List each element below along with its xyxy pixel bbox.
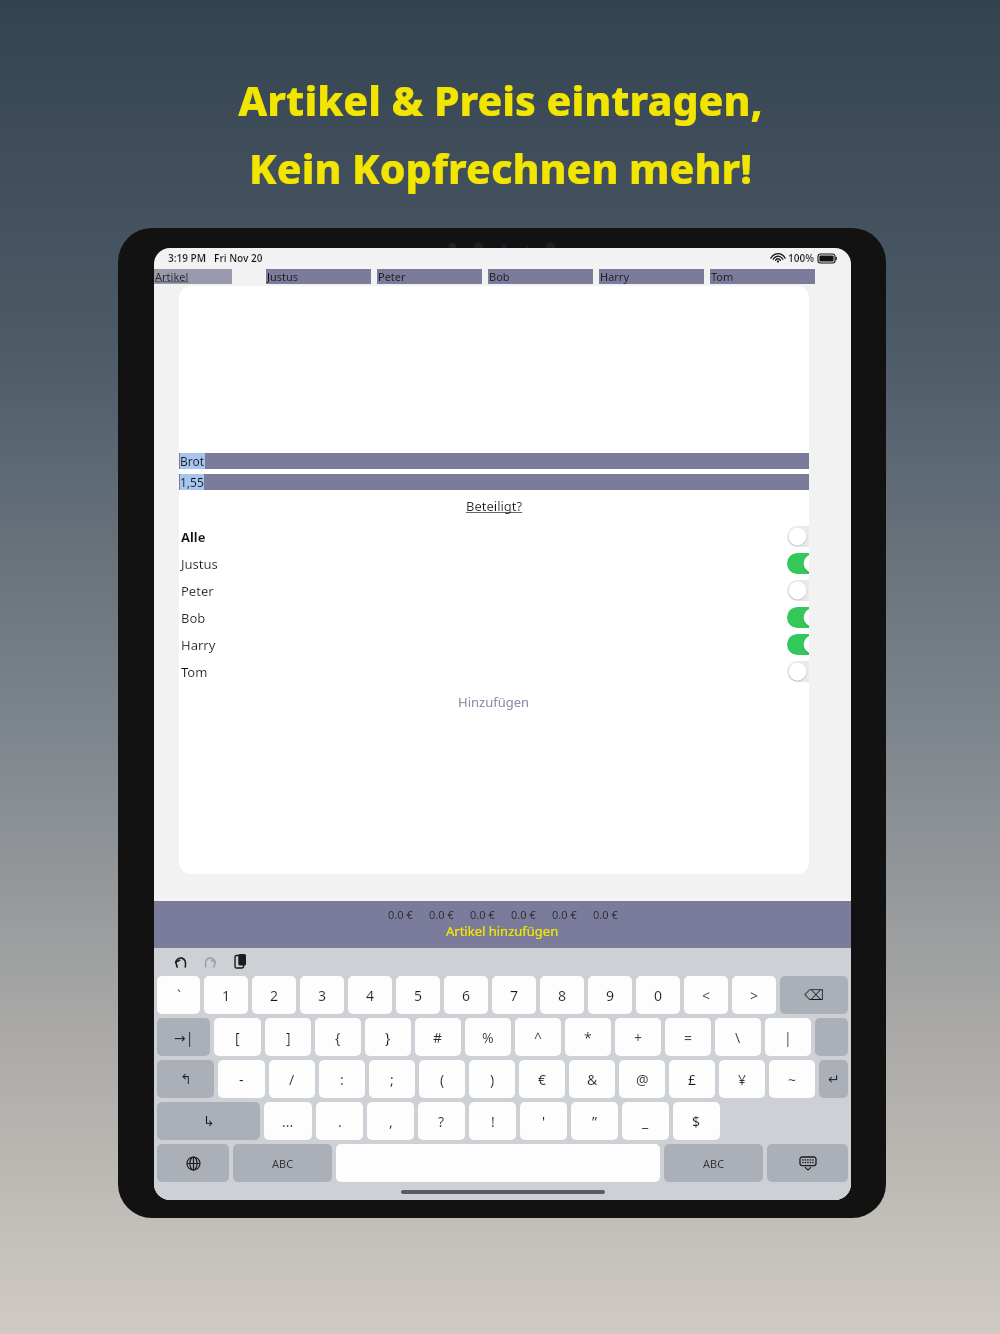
staticText: 3 bbox=[318, 986, 327, 1005]
button[interactable]: Return bbox=[819, 1060, 848, 1098]
staticText: ! bbox=[491, 1112, 495, 1131]
button[interactable]: ` bbox=[157, 976, 200, 1014]
button[interactable]: £ bbox=[669, 1060, 715, 1098]
button[interactable]: 8 bbox=[540, 976, 584, 1014]
button[interactable]: + bbox=[615, 1018, 661, 1056]
button[interactable]: ABC bbox=[233, 1144, 332, 1182]
button[interactable]: Peter bbox=[377, 269, 482, 284]
button[interactable]: 6 bbox=[444, 976, 488, 1014]
button[interactable]: 2 bbox=[252, 976, 296, 1014]
button[interactable]: 0 bbox=[636, 976, 680, 1014]
button[interactable]: Alle bbox=[179, 523, 809, 550]
button[interactable]: Harry bbox=[787, 634, 809, 655]
button[interactable]: { bbox=[315, 1018, 361, 1056]
staticText: 8 bbox=[558, 986, 567, 1005]
button[interactable]: ~ bbox=[769, 1060, 815, 1098]
button[interactable]: Tom bbox=[710, 269, 815, 284]
button[interactable]: Undo bbox=[170, 951, 190, 971]
button[interactable]: Harry bbox=[599, 269, 704, 284]
button[interactable]: ... bbox=[264, 1102, 312, 1140]
button[interactable]: Redo bbox=[157, 1102, 260, 1140]
staticText: Bob bbox=[489, 269, 510, 284]
staticText: ↵ bbox=[828, 1071, 840, 1087]
button[interactable]: Justus bbox=[179, 550, 809, 577]
button[interactable]: Bob bbox=[179, 604, 809, 631]
button[interactable]: Justus bbox=[266, 269, 371, 284]
button[interactable]: = bbox=[665, 1018, 711, 1056]
button[interactable]: Hide keyboard bbox=[767, 1144, 848, 1182]
button[interactable]: 1 bbox=[204, 976, 248, 1014]
button[interactable]: Brot bbox=[179, 453, 809, 469]
button[interactable]: > bbox=[732, 976, 776, 1014]
button[interactable]: 3 bbox=[300, 976, 344, 1014]
button[interactable]: \ bbox=[715, 1018, 761, 1056]
button[interactable]: ; bbox=[369, 1060, 415, 1098]
button[interactable]: 9 bbox=[588, 976, 632, 1014]
button[interactable]: Tom bbox=[787, 661, 809, 682]
button[interactable]: : bbox=[319, 1060, 365, 1098]
button[interactable]: ( bbox=[419, 1060, 465, 1098]
button[interactable]: Alle bbox=[787, 526, 809, 547]
button[interactable]: ) bbox=[469, 1060, 515, 1098]
button[interactable]: ” bbox=[571, 1102, 618, 1140]
button[interactable]: < bbox=[684, 976, 728, 1014]
staticText: ” bbox=[592, 1112, 598, 1131]
button[interactable]: @ bbox=[619, 1060, 665, 1098]
button[interactable]: ABC bbox=[664, 1144, 763, 1182]
button[interactable]: ¥ bbox=[719, 1060, 765, 1098]
button[interactable]: - bbox=[218, 1060, 265, 1098]
staticText: ) bbox=[490, 1070, 495, 1089]
button[interactable]: Justus bbox=[787, 553, 809, 574]
button[interactable]: ' bbox=[520, 1102, 567, 1140]
button[interactable]: Peter bbox=[179, 577, 809, 604]
button[interactable]: 4 bbox=[348, 976, 392, 1014]
button[interactable]: Tab bbox=[157, 1018, 210, 1056]
button[interactable]: Bob bbox=[488, 269, 593, 284]
staticText: _ bbox=[642, 1112, 649, 1131]
button[interactable]: * bbox=[565, 1018, 611, 1056]
button[interactable]: $ bbox=[673, 1102, 720, 1140]
button[interactable]: ^ bbox=[515, 1018, 561, 1056]
button[interactable]: Key bbox=[815, 1018, 848, 1056]
button[interactable]: ! bbox=[469, 1102, 516, 1140]
staticText: Artikel hinzufügen bbox=[446, 922, 559, 940]
button[interactable]: 5 bbox=[396, 976, 440, 1014]
button[interactable]: ] bbox=[265, 1018, 311, 1056]
button[interactable]: Redo bbox=[200, 951, 220, 971]
button[interactable]: Paste bbox=[230, 951, 250, 971]
button[interactable]: Hinzufügen bbox=[179, 693, 809, 711]
button[interactable]: € bbox=[519, 1060, 565, 1098]
staticText: } bbox=[385, 1028, 391, 1047]
button[interactable]: , bbox=[367, 1102, 414, 1140]
staticText: Brot bbox=[180, 453, 205, 469]
button[interactable]: | bbox=[765, 1018, 811, 1056]
button[interactable]: Harry bbox=[179, 631, 809, 658]
button[interactable]: _ bbox=[622, 1102, 669, 1140]
button[interactable]: Tom bbox=[179, 658, 809, 685]
button[interactable]: Peter bbox=[787, 580, 809, 601]
staticText: Artikel & Preis eintragen, bbox=[238, 72, 763, 128]
button[interactable]: } bbox=[365, 1018, 411, 1056]
button[interactable]: Bob bbox=[787, 607, 809, 628]
button[interactable]: Backspace bbox=[780, 976, 848, 1014]
button[interactable]: / bbox=[269, 1060, 315, 1098]
staticText: ABC bbox=[703, 1156, 725, 1171]
button[interactable]: # bbox=[415, 1018, 461, 1056]
button[interactable]: . bbox=[316, 1102, 363, 1140]
button[interactable]: Undo bbox=[157, 1060, 214, 1098]
button[interactable]: Change keyboard bbox=[157, 1144, 229, 1182]
button[interactable]: Artikel hinzufügen bbox=[154, 922, 851, 940]
button[interactable]: % bbox=[465, 1018, 511, 1056]
button[interactable]: Artikel bbox=[154, 269, 232, 284]
staticText: ] bbox=[286, 1028, 291, 1047]
staticText: Peter bbox=[378, 269, 406, 284]
button[interactable]: & bbox=[569, 1060, 615, 1098]
button[interactable]: [ bbox=[214, 1018, 261, 1056]
button[interactable]: ? bbox=[418, 1102, 465, 1140]
button[interactable]: 7 bbox=[492, 976, 536, 1014]
staticText: 0.0 € bbox=[429, 907, 454, 922]
button[interactable]: 1,55 bbox=[179, 474, 809, 490]
staticText: # bbox=[433, 1028, 443, 1047]
staticText: 6 bbox=[462, 986, 471, 1005]
